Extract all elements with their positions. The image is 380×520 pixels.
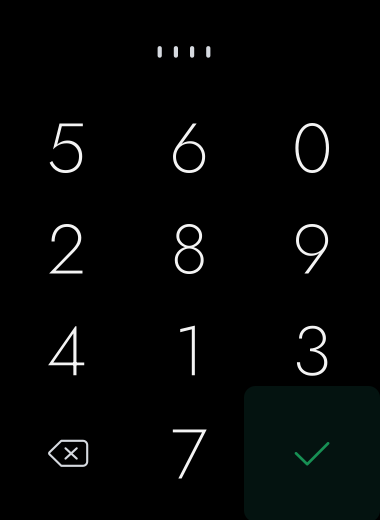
button[interactable]: 2 [5,198,127,299]
button[interactable]: 0 [251,97,373,198]
button[interactable]: 9 [251,198,373,299]
button[interactable]: 4 [5,300,127,401]
staticText: 2 [47,198,85,300]
button[interactable]: 3 [251,300,373,401]
staticText: 9 [292,198,331,300]
button[interactable]: Delete [7,403,129,504]
staticText: 6 [169,97,208,199]
button[interactable]: Confirm [244,386,380,520]
button[interactable]: 6 [128,97,250,198]
staticText: 0 [292,97,332,199]
button[interactable]: 5 [5,97,127,198]
staticText: 3 [292,300,331,402]
button[interactable]: 1 [128,300,250,401]
button[interactable]: 8 [128,198,250,299]
staticText: 7 [170,403,207,505]
staticText: 8 [170,198,207,300]
staticText: 4 [46,300,86,402]
staticText: 1 [174,300,204,402]
button[interactable]: 7 [128,403,250,504]
staticText: 5 [46,97,86,199]
